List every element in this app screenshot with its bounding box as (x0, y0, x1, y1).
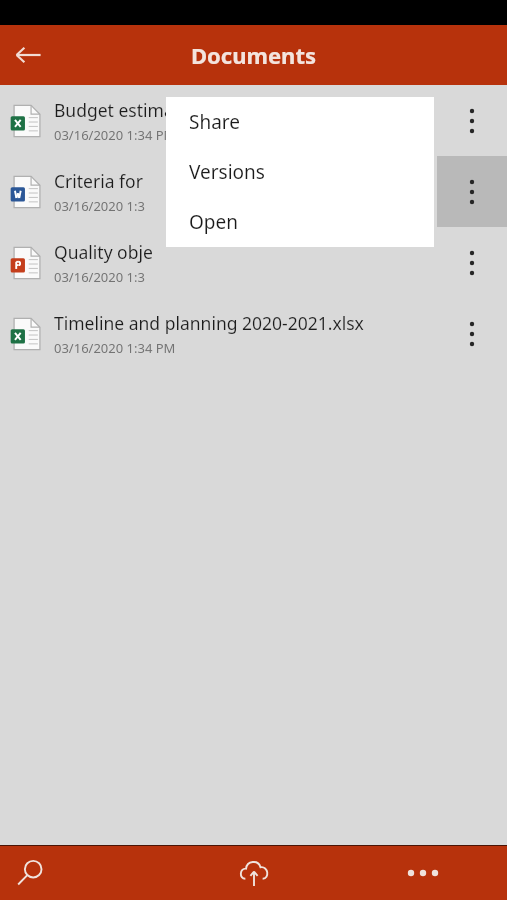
staticText: 03/16/2020 1:3 (54, 197, 145, 215)
staticText: 03/16/2020 1:34 PM (54, 126, 176, 144)
button[interactable]: More options (437, 227, 507, 298)
button[interactable]: Open (166, 197, 434, 247)
button[interactable]: More options (338, 845, 507, 900)
staticText: Share (189, 109, 241, 135)
staticText: Quality obje (54, 240, 153, 264)
staticText: 03/16/2020 1:34 PM (54, 339, 176, 357)
staticText: Timeline and planning 2020-2021.xlsx (54, 311, 364, 335)
button[interactable]: Timeline and planning 2020-2021.xlsx (0, 298, 507, 369)
button[interactable]: Criteria for (0, 156, 507, 227)
button[interactable]: Budget estimates - revised.xlsx (0, 85, 507, 156)
button[interactable]: Search (0, 845, 169, 900)
staticText: Versions (189, 159, 265, 185)
button[interactable]: Share (166, 97, 434, 147)
button[interactable]: More options (437, 156, 507, 227)
staticText: 03/16/2020 1:3 (54, 268, 145, 286)
button[interactable]: More options (437, 298, 507, 369)
button[interactable]: Quality obje (0, 227, 507, 298)
button[interactable]: Versions (166, 147, 434, 197)
staticText: Documents (191, 40, 316, 70)
button[interactable]: More options (437, 85, 507, 156)
staticText: Budget estimates - revised.xlsx (54, 98, 308, 122)
staticText: Open (189, 209, 238, 235)
button[interactable]: Upload (169, 845, 338, 900)
button[interactable]: Back (0, 27, 56, 83)
staticText: Criteria for (54, 169, 148, 193)
